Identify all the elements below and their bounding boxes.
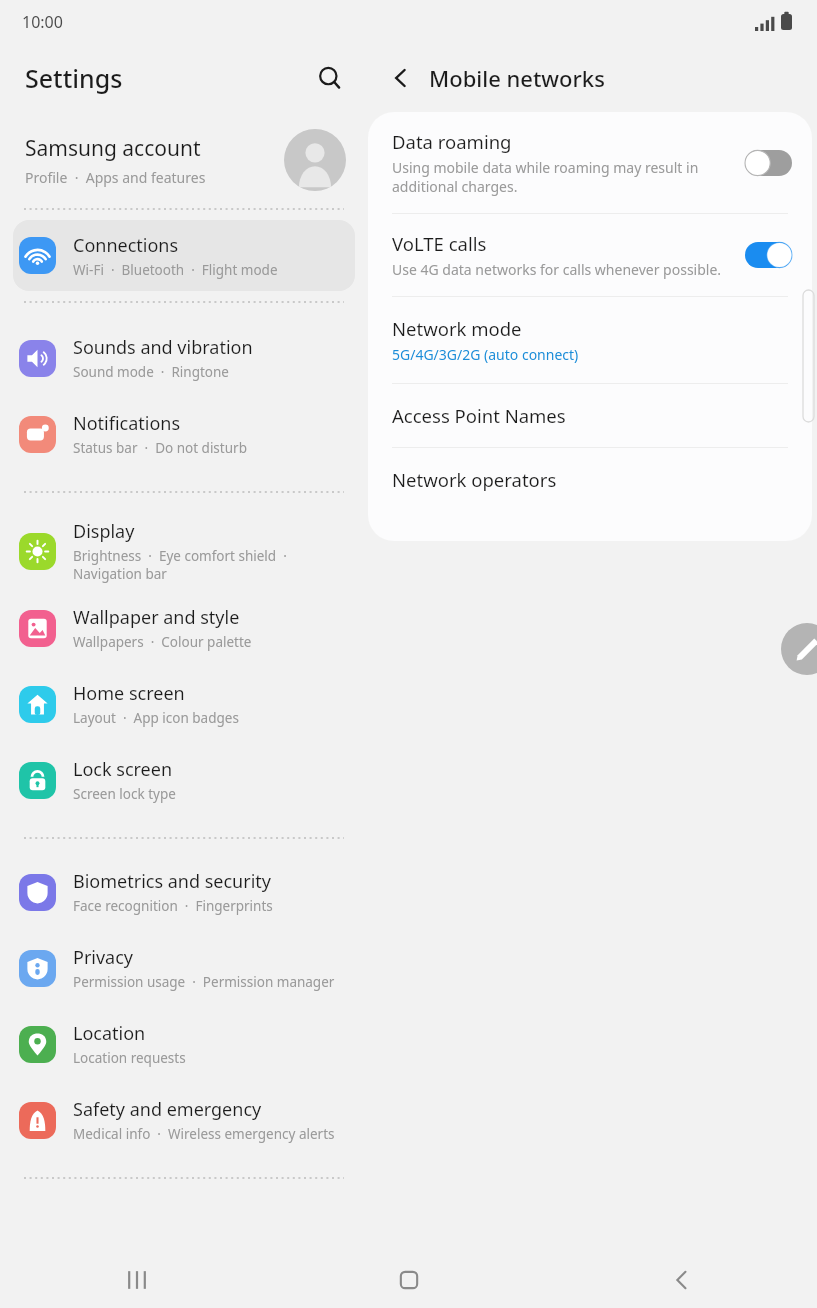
button[interactable]: Edit — [781, 623, 817, 675]
staticText: Home screen — [73, 681, 185, 706]
staticText: 10:00 — [22, 11, 63, 33]
staticText: Privacy — [73, 945, 134, 970]
staticText: Biometrics and security — [73, 869, 271, 894]
button[interactable]: VoLTE calls — [745, 242, 792, 268]
staticText: Medical info · Wireless emergency alerts — [73, 1125, 335, 1143]
button[interactable]: Network mode — [368, 297, 812, 383]
button[interactable]: Notifications — [13, 405, 355, 463]
staticText: Use 4G data networks for calls whenever … — [392, 260, 722, 279]
staticText: Samsung account — [25, 134, 201, 163]
staticText: Display — [73, 519, 135, 544]
staticText: Wi-Fi · Bluetooth · Flight mode — [73, 261, 278, 279]
button[interactable]: Recents — [0, 1252, 273, 1308]
button[interactable]: Home screen — [13, 675, 355, 733]
staticText: Profile · Apps and features — [25, 168, 206, 187]
staticText: Network mode — [392, 316, 522, 341]
staticText: Connections — [73, 233, 179, 258]
button[interactable]: Network operators — [368, 448, 812, 511]
staticText: Access Point Names — [392, 403, 566, 428]
button[interactable]: Access Point Names — [368, 384, 812, 447]
button[interactable]: Home — [273, 1252, 545, 1308]
button[interactable]: Display — [13, 517, 355, 585]
button[interactable]: Location — [13, 1015, 355, 1073]
staticText: Wallpaper and style — [73, 605, 240, 630]
button[interactable]: Privacy — [13, 939, 355, 997]
button[interactable]: Back — [545, 1252, 817, 1308]
staticText: Data roaming — [392, 129, 512, 154]
staticText: Safety and emergency — [73, 1097, 262, 1122]
button[interactable]: VoLTE calls — [368, 214, 812, 296]
button[interactable]: Data roaming — [745, 150, 792, 176]
staticText: Status bar · Do not disturb — [73, 439, 247, 457]
staticText: Screen lock type — [73, 785, 176, 803]
staticText: Permission usage · Permission manager — [73, 973, 335, 991]
staticText: 5G/4G/3G/2G (auto connect) — [392, 345, 579, 364]
button[interactable]: Lock screen — [13, 751, 355, 809]
button[interactable]: Safety and emergency — [13, 1091, 355, 1149]
staticText: Sound mode · Ringtone — [73, 363, 229, 381]
button[interactable]: Data roaming — [368, 112, 812, 213]
button[interactable]: Samsung account — [0, 112, 368, 208]
staticText: Wallpapers · Colour palette — [73, 633, 252, 651]
button[interactable]: Sounds and vibration — [13, 329, 355, 387]
staticText: Notifications — [73, 411, 181, 436]
staticText: Face recognition · Fingerprints — [73, 897, 273, 915]
button[interactable]: Wallpaper and style — [13, 599, 355, 657]
staticText: Location requests — [73, 1049, 186, 1067]
staticText: Mobile networks — [429, 63, 605, 93]
button[interactable]: Connections — [13, 220, 355, 291]
staticText: Brightness · Eye comfort shield · Naviga… — [73, 547, 287, 583]
staticText: Settings — [25, 61, 123, 95]
button[interactable]: Biometrics and security — [13, 863, 355, 921]
staticText: Location — [73, 1021, 146, 1046]
staticText: Sounds and vibration — [73, 335, 253, 360]
staticText: Layout · App icon badges — [73, 709, 239, 727]
button[interactable]: Search — [306, 54, 354, 102]
staticText: Network operators — [392, 467, 557, 492]
staticText: VoLTE calls — [392, 231, 487, 256]
staticText: Lock screen — [73, 757, 173, 782]
button[interactable]: Back — [378, 55, 424, 101]
staticText: Using mobile data while roaming may resu… — [392, 158, 699, 196]
